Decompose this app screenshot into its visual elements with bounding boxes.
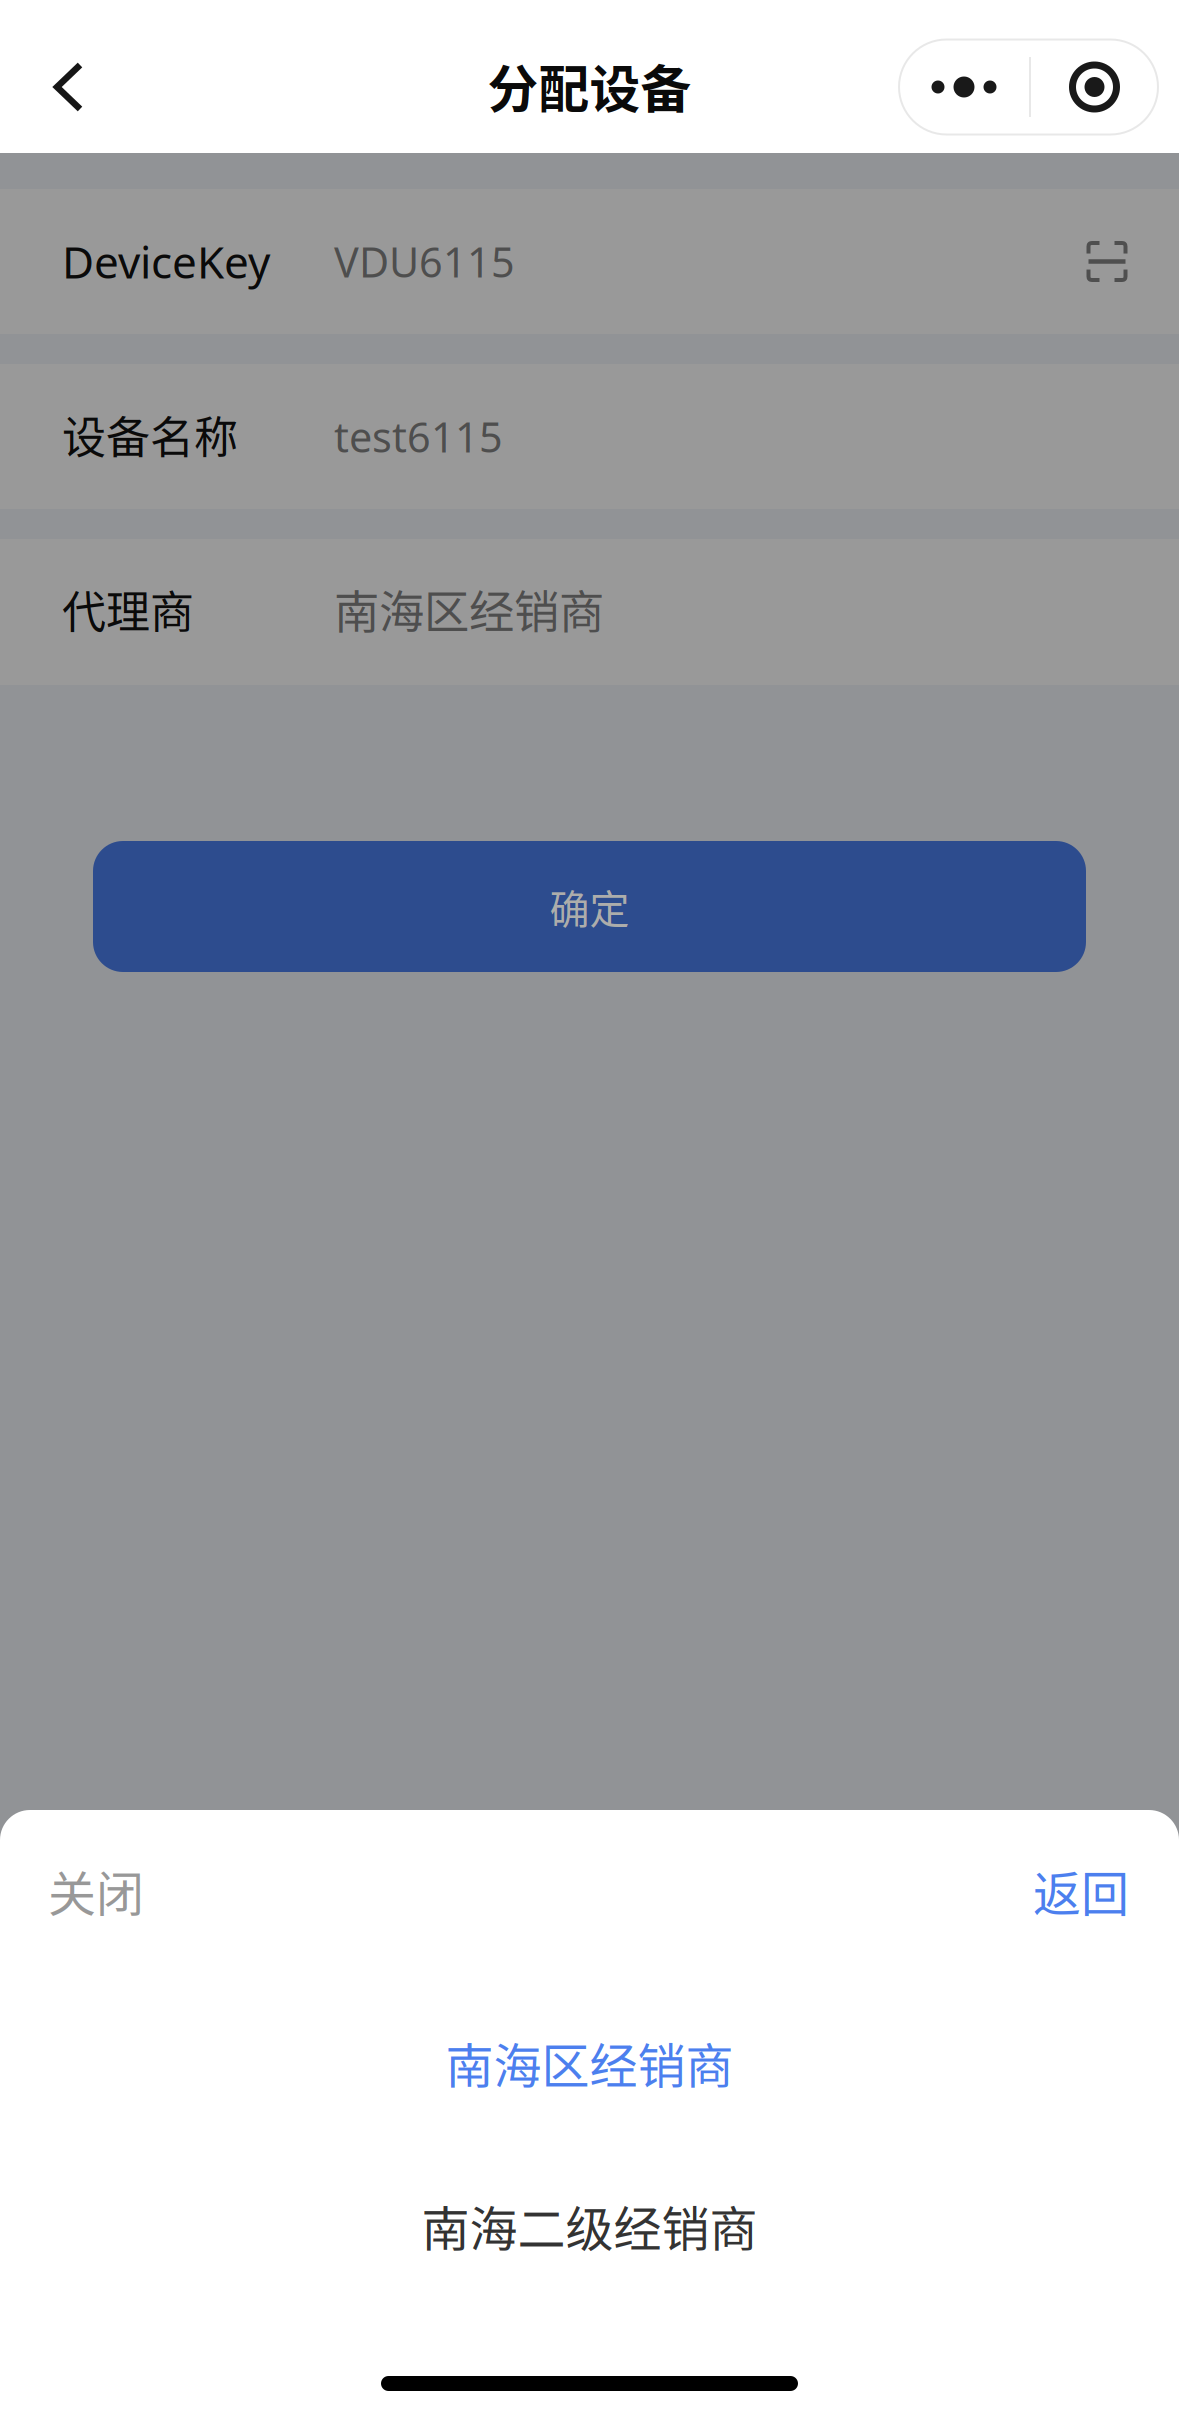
button[interactable]: 关闭 [48, 1842, 238, 1939]
staticText: 南海二级经销商 [421, 2191, 757, 2260]
button[interactable]: 确定 [93, 841, 1086, 972]
staticText: 设备名称 [62, 403, 238, 466]
staticText: test6115 [334, 409, 503, 464]
staticText: 关闭 [48, 1856, 144, 1925]
staticText: 分配设备 [487, 49, 691, 123]
button[interactable]: Scan code [1086, 240, 1128, 282]
staticText: 代理商 [62, 577, 194, 641]
button[interactable]: 设备名称 [0, 364, 1179, 509]
button[interactable]: More [899, 39, 1029, 134]
button[interactable]: 南海区经销商 [0, 1981, 1179, 2144]
button[interactable]: 返回 [939, 1842, 1129, 1939]
staticText: 南海区经销商 [334, 576, 604, 642]
button[interactable]: Close mini program [1031, 39, 1158, 134]
staticText: VDU6115 [334, 234, 515, 289]
button[interactable]: 代理商 [0, 539, 1179, 685]
staticText: 南海区经销商 [445, 2028, 733, 2097]
button[interactable]: 南海二级经销商 [0, 2144, 1179, 2307]
staticText: 确定 [549, 877, 629, 935]
button[interactable]: Back [18, 32, 118, 142]
staticText: 返回 [1033, 1856, 1129, 1925]
staticText: DeviceKey [62, 232, 270, 291]
